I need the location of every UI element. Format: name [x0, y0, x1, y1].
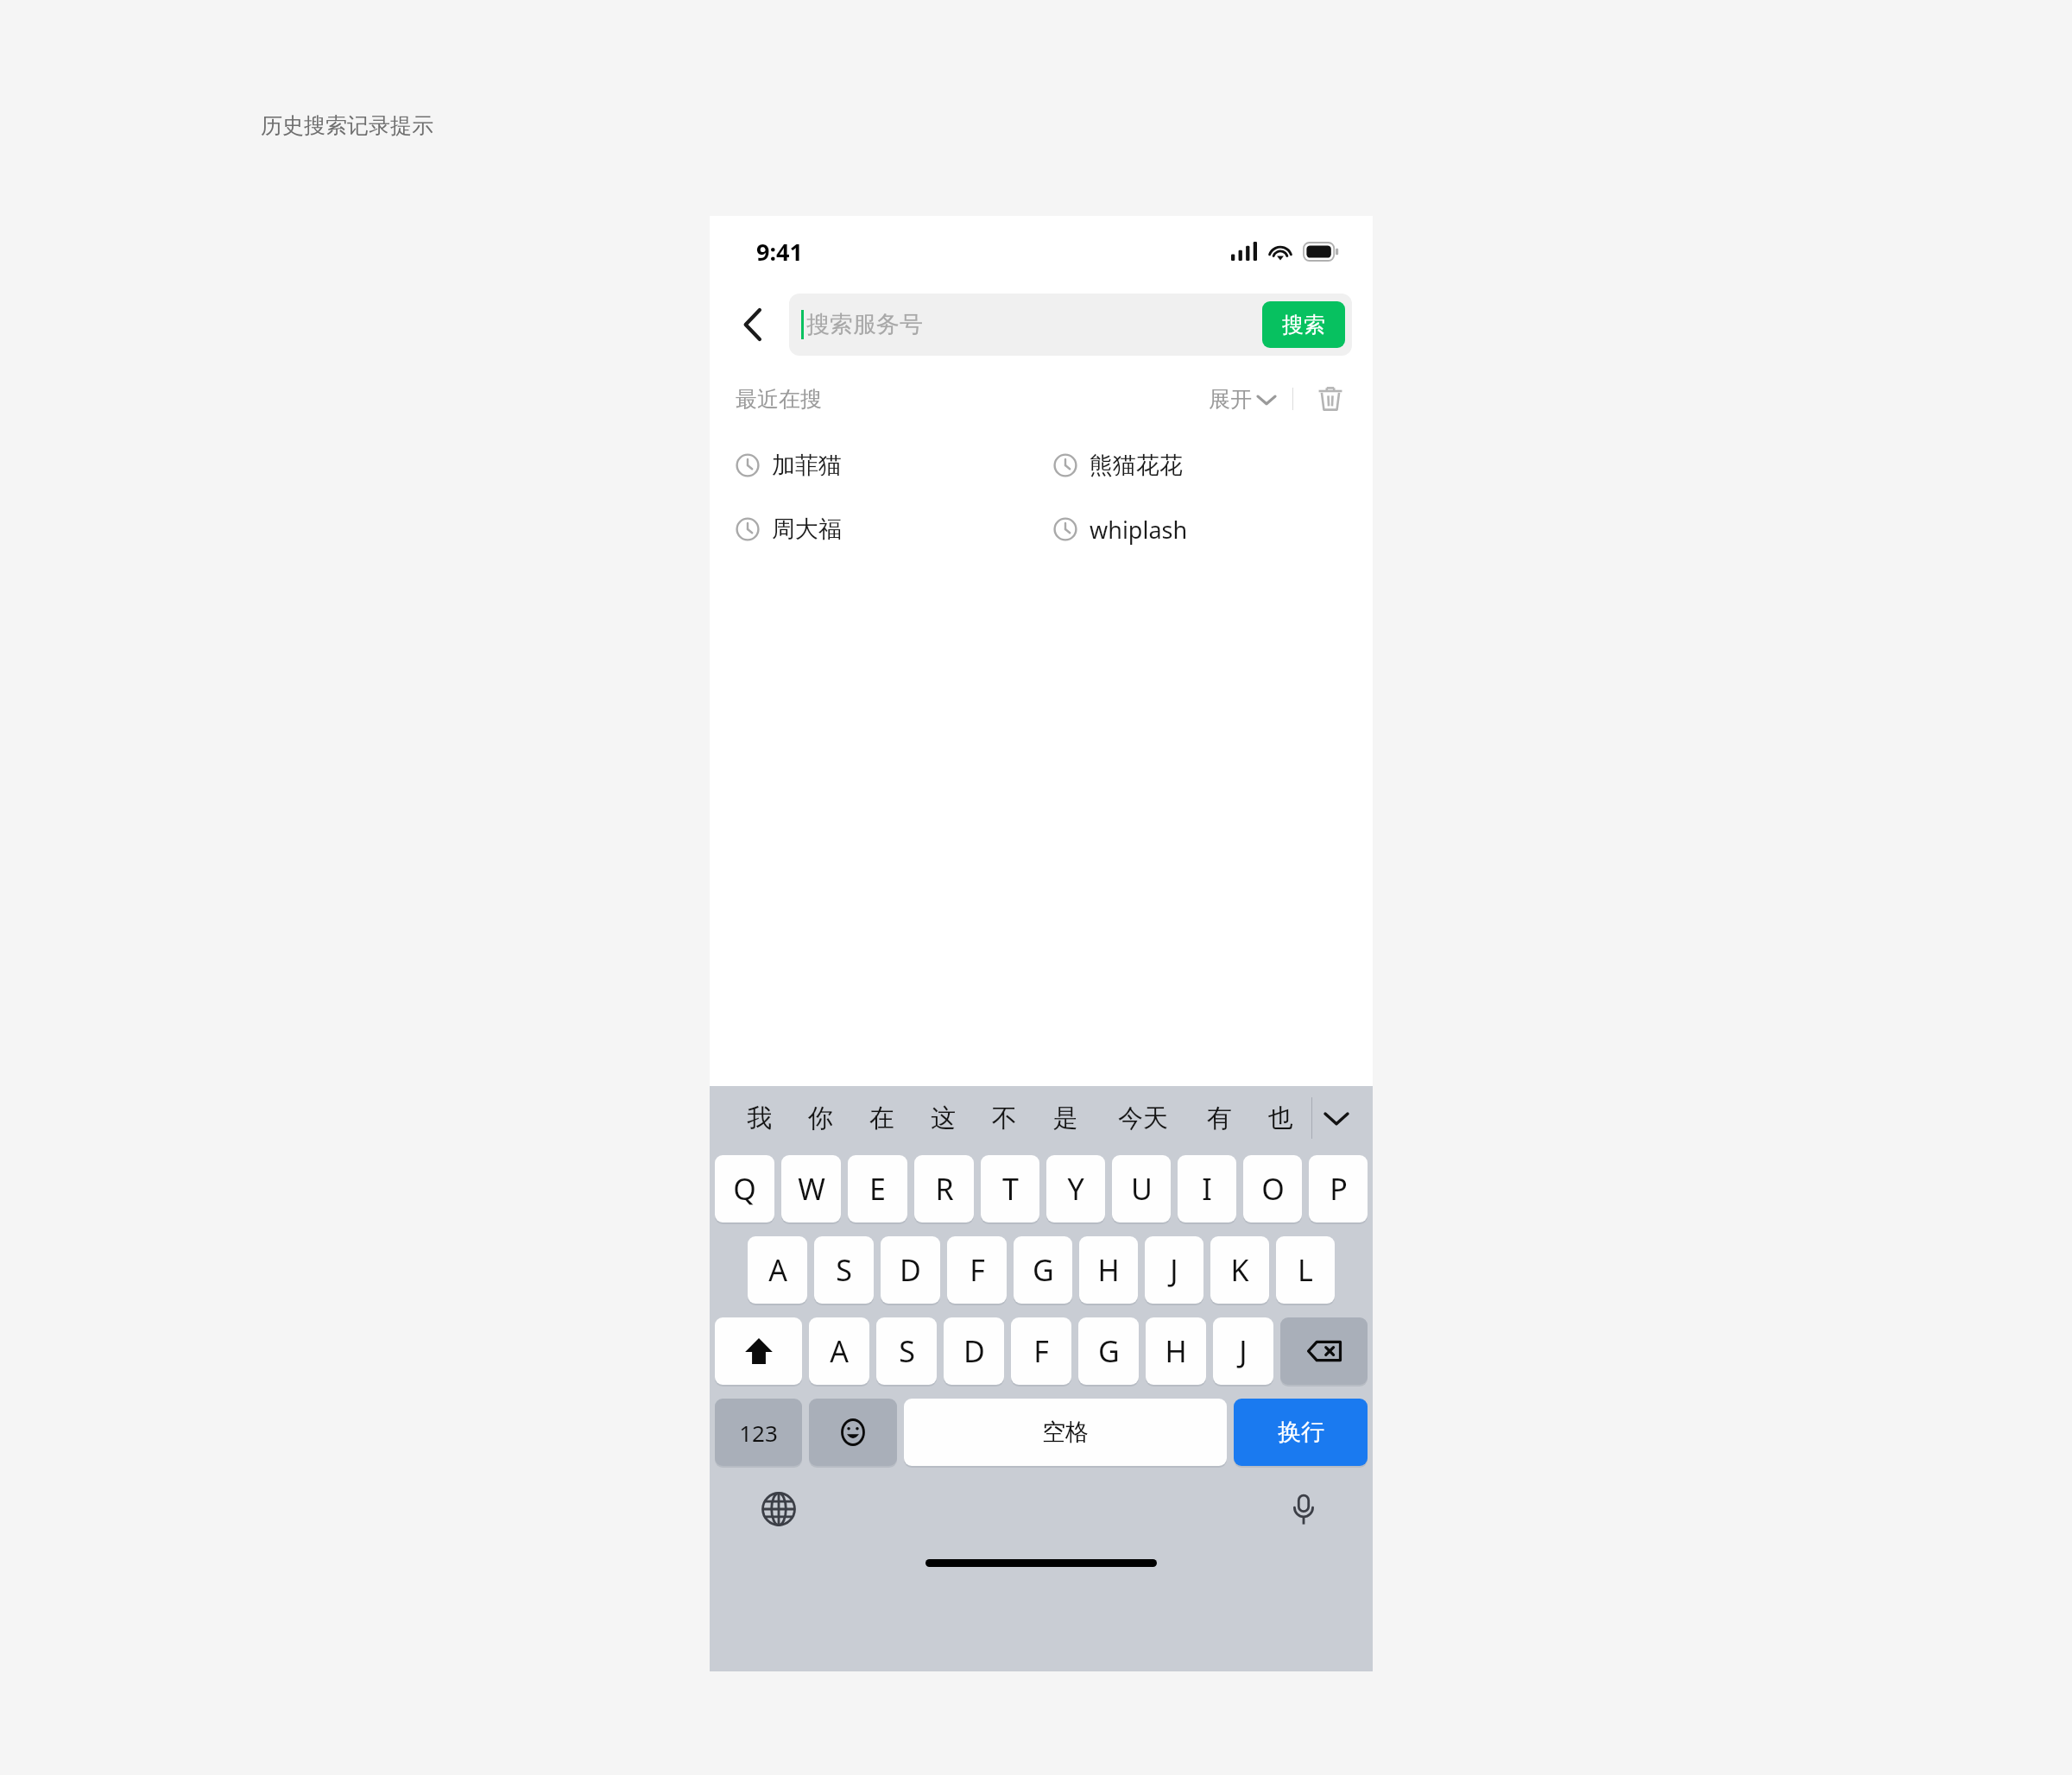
button[interactable]: 周大福	[736, 497, 1041, 561]
staticText: L	[1298, 1250, 1313, 1290]
button[interactable]: L	[1276, 1236, 1335, 1304]
button[interactable]: S	[814, 1236, 874, 1304]
button[interactable]: 在	[851, 1086, 913, 1150]
button[interactable]: O	[1243, 1155, 1302, 1222]
button[interactable]: 今天	[1096, 1086, 1189, 1150]
staticText: I	[1202, 1169, 1212, 1209]
staticText: D	[900, 1250, 921, 1290]
button[interactable]: J	[1145, 1236, 1203, 1304]
button[interactable]: 这	[913, 1086, 974, 1150]
button[interactable]: whiplash	[1053, 497, 1373, 561]
button[interactable]: 表情	[809, 1399, 897, 1466]
button[interactable]: 返回	[730, 302, 775, 347]
button[interactable]: S	[876, 1317, 937, 1385]
staticText: O	[1261, 1169, 1285, 1209]
staticText: G	[1098, 1331, 1120, 1371]
button[interactable]: 是	[1035, 1086, 1096, 1150]
staticText: A	[830, 1331, 849, 1371]
staticText: W	[798, 1169, 825, 1209]
staticText: 搜索服务号	[806, 310, 923, 339]
button[interactable]: 搜索服务号	[789, 294, 1352, 356]
button[interactable]: 换行	[1234, 1399, 1368, 1466]
button[interactable]: 也	[1250, 1086, 1311, 1150]
staticText: Y	[1067, 1169, 1084, 1209]
button[interactable]: F	[1011, 1317, 1071, 1385]
button[interactable]: P	[1309, 1155, 1368, 1222]
button[interactable]: W	[781, 1155, 841, 1222]
staticText: H	[1165, 1331, 1187, 1371]
button[interactable]: K	[1210, 1236, 1269, 1304]
staticText: R	[935, 1169, 954, 1209]
button[interactable]: F	[947, 1236, 1007, 1304]
button[interactable]: 加菲猫	[736, 433, 1041, 497]
button[interactable]: H	[1146, 1317, 1206, 1385]
staticText: 在	[869, 1102, 894, 1134]
button[interactable]: D	[944, 1317, 1004, 1385]
button[interactable]: H	[1079, 1236, 1138, 1304]
staticText: U	[1131, 1169, 1153, 1209]
button[interactable]: 你	[790, 1086, 851, 1150]
staticText: 也	[1268, 1102, 1293, 1134]
staticText: 最近在搜	[736, 386, 822, 413]
button[interactable]: T	[981, 1155, 1039, 1222]
button[interactable]: R	[914, 1155, 974, 1222]
button[interactable]: 删除	[1280, 1317, 1368, 1385]
staticText: 空格	[1042, 1418, 1089, 1447]
button[interactable]: A	[809, 1317, 869, 1385]
button[interactable]: 清除历史记录	[1311, 379, 1350, 419]
staticText: J	[1239, 1331, 1248, 1371]
staticText: whiplash	[1090, 514, 1188, 546]
button[interactable]: 123	[715, 1399, 802, 1466]
staticText: 9:41	[756, 236, 803, 268]
staticText: E	[869, 1169, 886, 1209]
staticText: 今天	[1118, 1102, 1168, 1134]
button[interactable]: G	[1078, 1317, 1139, 1385]
staticText: 加菲猫	[772, 451, 842, 480]
button[interactable]: 收起候选	[1312, 1086, 1361, 1150]
button[interactable]: 不	[974, 1086, 1035, 1150]
staticText: 123	[739, 1418, 778, 1448]
button[interactable]: E	[848, 1155, 907, 1222]
staticText: 搜索	[1282, 312, 1325, 338]
staticText: S	[836, 1250, 852, 1290]
staticText: G	[1033, 1250, 1054, 1290]
button[interactable]: 展开	[1209, 386, 1275, 413]
button[interactable]: I	[1178, 1155, 1236, 1222]
button[interactable]: D	[881, 1236, 940, 1304]
button[interactable]: Shift	[715, 1317, 802, 1385]
staticText: D	[963, 1331, 985, 1371]
button[interactable]: 有	[1189, 1086, 1250, 1150]
staticText: 有	[1207, 1102, 1232, 1134]
staticText: 你	[808, 1102, 833, 1134]
button[interactable]: Y	[1046, 1155, 1105, 1222]
button[interactable]: U	[1112, 1155, 1171, 1222]
staticText: 展开	[1209, 386, 1252, 413]
button[interactable]: 我	[729, 1086, 790, 1150]
staticText: F	[1033, 1331, 1049, 1371]
button[interactable]: 搜索	[1262, 301, 1345, 348]
button[interactable]: J	[1213, 1317, 1273, 1385]
staticText: 历史搜索记录提示	[261, 112, 433, 139]
staticText: Q	[733, 1169, 756, 1209]
staticText: K	[1230, 1250, 1249, 1290]
staticText: 换行	[1278, 1418, 1324, 1447]
button[interactable]: 语音输入	[1279, 1485, 1328, 1533]
button[interactable]: Q	[715, 1155, 774, 1222]
button[interactable]: A	[748, 1236, 807, 1304]
staticText: 是	[1053, 1102, 1078, 1134]
button[interactable]: 空格	[904, 1399, 1227, 1466]
staticText: H	[1097, 1250, 1120, 1290]
staticText: 我	[747, 1102, 772, 1134]
staticText: J	[1170, 1250, 1178, 1290]
button[interactable]: 切换输入法	[755, 1485, 803, 1533]
button[interactable]: 熊猫花花	[1053, 433, 1373, 497]
staticText: F	[970, 1250, 985, 1290]
button[interactable]: G	[1014, 1236, 1072, 1304]
staticText: 不	[992, 1102, 1017, 1134]
staticText: P	[1330, 1169, 1348, 1209]
staticText: S	[899, 1331, 915, 1371]
staticText: 周大福	[772, 515, 842, 544]
staticText: A	[768, 1250, 787, 1290]
staticText: T	[1002, 1169, 1019, 1209]
staticText: 这	[931, 1102, 956, 1134]
